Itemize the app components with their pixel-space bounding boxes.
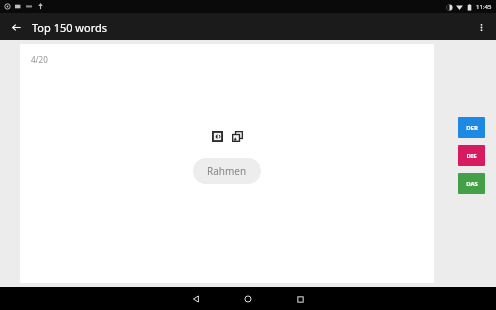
staticText: 11:45 <box>476 3 492 11</box>
button[interactable]: Back <box>186 289 206 309</box>
button[interactable]: More options <box>470 16 492 38</box>
button[interactable]: DIE <box>458 145 485 166</box>
staticText: DAS <box>466 180 478 188</box>
staticText: Rahmen <box>207 164 247 178</box>
button[interactable]: Show image <box>232 131 243 142</box>
button[interactable]: Play audio <box>212 131 223 142</box>
button[interactable]: Rahmen <box>193 158 261 184</box>
button[interactable]: Recent apps <box>290 289 310 309</box>
button[interactable]: DAS <box>458 173 485 194</box>
staticText: DER <box>466 124 478 132</box>
staticText: DIE <box>466 152 477 160</box>
staticText: 4/20 <box>31 54 48 65</box>
button[interactable]: Home <box>238 289 258 309</box>
button[interactable]: Back <box>6 17 26 37</box>
staticText: Top 150 words <box>32 20 108 35</box>
button[interactable]: DER <box>458 117 485 138</box>
